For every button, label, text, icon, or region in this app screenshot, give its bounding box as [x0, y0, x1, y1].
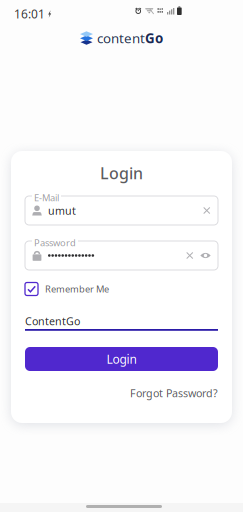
- button[interactable]: Forgot Password?: [25, 387, 218, 399]
- button[interactable]: Show password: [200, 252, 211, 259]
- button[interactable]: Remember Me: [25, 282, 218, 296]
- staticText: Go: [145, 29, 163, 47]
- button[interactable]: Clear e-mail: [202, 206, 211, 215]
- staticText: ContentGo: [25, 314, 80, 328]
- button[interactable]: Clear password: [185, 251, 194, 260]
- staticText: content: [97, 29, 145, 47]
- staticText: Login: [106, 351, 136, 367]
- staticText: Forgot Password?: [130, 386, 218, 400]
- staticText: 16:01: [14, 6, 45, 22]
- staticText: Password: [34, 236, 76, 249]
- staticText: Remember Me: [45, 283, 109, 295]
- staticText: E-Mail: [34, 191, 59, 204]
- button[interactable]: Login: [25, 347, 218, 371]
- staticText: Login: [100, 162, 143, 184]
- staticText: umut: [48, 203, 76, 218]
